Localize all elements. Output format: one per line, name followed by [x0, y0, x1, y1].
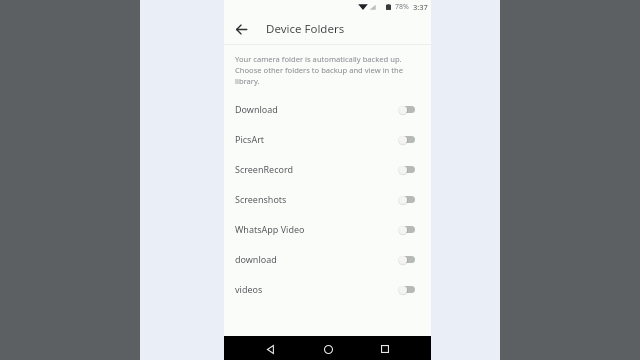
button[interactable]: Toggle folder backup: [398, 104, 416, 115]
staticText: 3:37: [413, 2, 428, 12]
button[interactable]: PicsArt: [224, 124, 431, 154]
staticText: PicsArt: [235, 133, 265, 145]
button[interactable]: Recents: [374, 338, 396, 360]
button[interactable]: Home: [317, 338, 339, 360]
staticText: Device Folders: [266, 21, 345, 37]
button[interactable]: Toggle folder backup: [398, 164, 416, 175]
staticText: Screenshots: [235, 193, 287, 205]
button[interactable]: Toggle folder backup: [398, 224, 416, 235]
staticText: Your camera folder is automatically back…: [235, 54, 421, 86]
staticText: 78%: [395, 2, 409, 12]
button[interactable]: Toggle folder backup: [398, 134, 416, 145]
staticText: videos: [235, 283, 263, 295]
button[interactable]: download: [224, 244, 431, 274]
button[interactable]: Back: [259, 338, 281, 360]
button[interactable]: ScreenRecord: [224, 154, 431, 184]
button[interactable]: Toggle folder backup: [398, 284, 416, 295]
button[interactable]: Download: [224, 94, 431, 124]
button[interactable]: Back: [224, 14, 259, 44]
staticText: download: [235, 253, 277, 265]
button[interactable]: Toggle folder backup: [398, 254, 416, 265]
staticText: Download: [235, 103, 278, 115]
button[interactable]: videos: [224, 274, 431, 304]
staticText: WhatsApp Video: [235, 223, 305, 235]
staticText: ScreenRecord: [235, 163, 294, 175]
button[interactable]: WhatsApp Video: [224, 214, 431, 244]
button[interactable]: Screenshots: [224, 184, 431, 214]
button[interactable]: Toggle folder backup: [398, 194, 416, 205]
